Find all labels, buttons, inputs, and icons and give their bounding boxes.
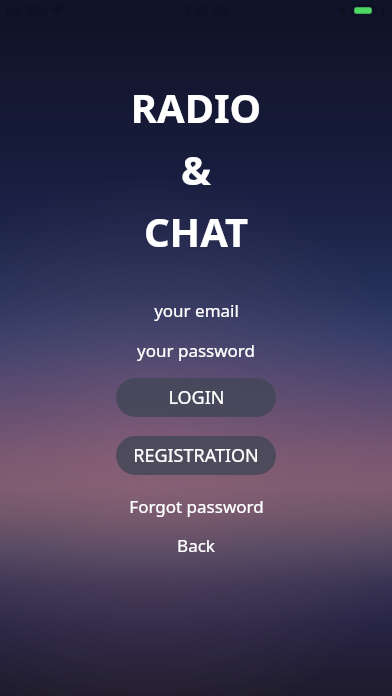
staticText: Forgot password — [129, 495, 264, 518]
button[interactable]: your email — [0, 295, 392, 325]
button[interactable]: LOGIN — [116, 378, 276, 417]
button[interactable]: REGISTRATION — [116, 436, 276, 475]
staticText: REGISTRATION — [133, 443, 259, 468]
staticText: 3:49 PM — [184, 2, 230, 18]
staticText: LOGIN — [168, 385, 225, 410]
staticText: RADIO — [0, 80, 392, 134]
staticText: & — [0, 142, 392, 196]
button[interactable]: Forgot password — [0, 493, 392, 519]
staticText: CHAT — [0, 204, 392, 258]
button[interactable]: Back — [0, 532, 392, 558]
staticText: your email — [154, 299, 239, 322]
staticText: your password — [137, 339, 255, 362]
staticText: Back — [177, 534, 215, 557]
button[interactable]: your password — [0, 335, 392, 365]
staticText: No SIM — [6, 2, 48, 18]
